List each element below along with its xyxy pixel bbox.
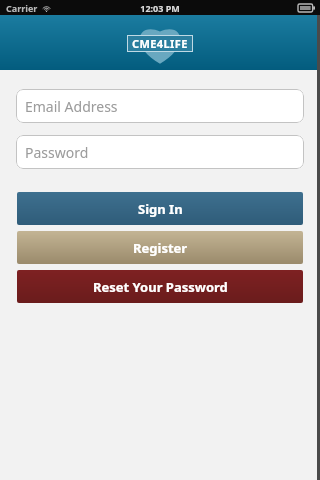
button[interactable]: Password <box>16 135 304 169</box>
staticText: Password <box>25 143 89 162</box>
button[interactable]: Register <box>17 231 303 264</box>
staticText: Sign In <box>138 200 183 218</box>
staticText: Register <box>133 239 188 257</box>
staticText: Carrier <box>6 2 38 14</box>
button[interactable]: Sign In <box>17 192 303 225</box>
staticText: Email Address <box>25 97 118 116</box>
staticText: 12:03 PM <box>140 2 180 14</box>
button[interactable]: Email Address <box>16 89 304 123</box>
staticText: Reset Your Password <box>93 278 228 296</box>
button[interactable]: Reset Your Password <box>17 270 303 303</box>
staticText: CME4LIFE <box>132 36 188 51</box>
